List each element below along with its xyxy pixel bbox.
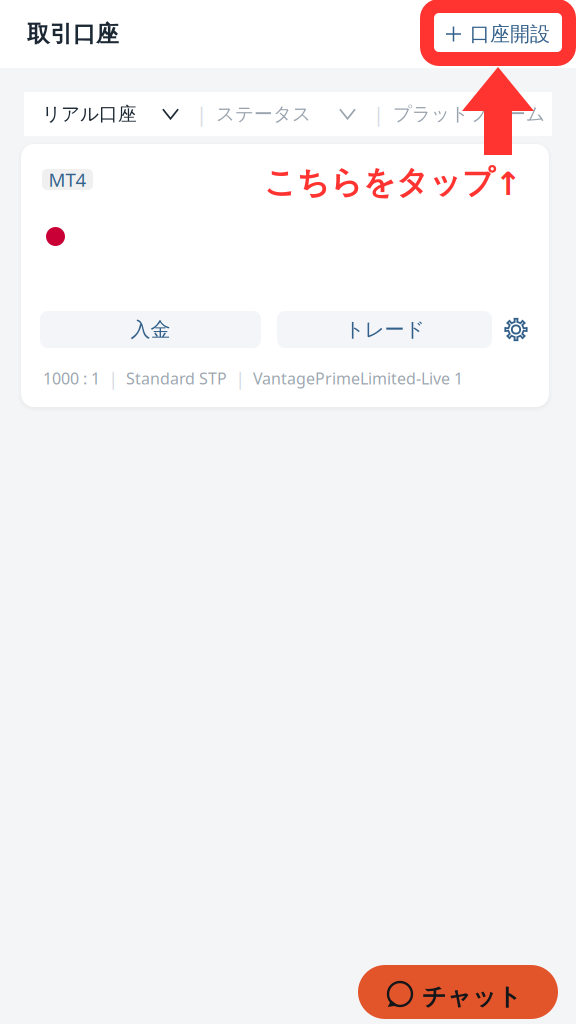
button[interactable]: Account settings [498,311,534,348]
staticText: 口座開設 [470,22,550,46]
button[interactable]: 入金 [40,311,261,348]
button[interactable]: チャット [358,965,558,1019]
staticText: チャット [422,982,522,1011]
staticText: プラットフォーム [393,102,545,125]
staticText: VantagePrimeLimited-Live 1 [253,368,463,389]
staticText: Standard STP [126,368,227,389]
staticText: 取引口座 [27,20,119,48]
staticText: | [235,366,245,391]
staticText: こちらをタップ↑ [264,163,522,202]
staticText: | [373,101,384,127]
staticText: MT4 [48,167,86,192]
staticText: トレード [344,317,424,342]
button[interactable]: プラットフォーム [393,91,576,136]
staticText: ステータス [216,102,311,125]
staticText: | [196,101,207,127]
staticText: | [108,366,118,391]
staticText: 1000 : 1 [43,368,100,389]
button[interactable]: ステータス [216,91,356,136]
staticText: リアル口座 [42,102,137,125]
button[interactable]: 口座開設 [436,14,560,54]
button[interactable]: トレード [277,311,492,348]
button[interactable]: リアル口座 [42,91,179,136]
staticText: 入金 [130,317,170,342]
